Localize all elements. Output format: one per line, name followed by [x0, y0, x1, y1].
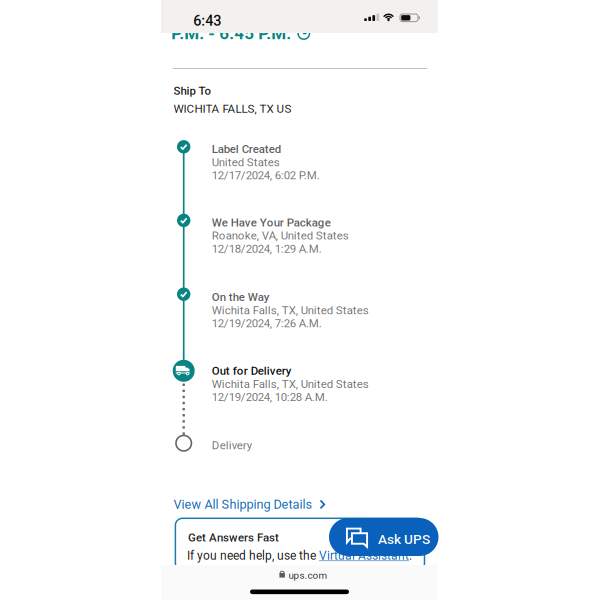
staticText: United States — [212, 155, 280, 169]
staticText: Wichita Falls, TX, United States — [212, 377, 369, 391]
staticText: Out for Delivery — [212, 364, 292, 378]
staticText: 6:43 — [193, 12, 221, 29]
staticText: Virtual Assistant — [319, 548, 409, 563]
staticText: P.M. - 6:45 P.M. — [171, 23, 291, 43]
staticText: Ship To — [173, 84, 211, 97]
staticText: 12/18/2024, 1:29 A.M. — [212, 242, 322, 255]
staticText: Get Answers Fast — [188, 531, 279, 544]
staticText: WICHITA FALLS, TX US — [173, 102, 291, 116]
staticText: View All Shipping Details — [173, 497, 312, 512]
staticText: We Have Your Package — [212, 216, 331, 229]
staticText: On the Way — [212, 290, 270, 304]
staticText: 12/19/2024, 10:28 A.M. — [212, 390, 328, 404]
staticText: . — [409, 548, 412, 563]
staticText: Roanoke, VA, United States — [212, 229, 349, 242]
staticText: Ask UPS — [378, 531, 430, 547]
staticText: 12/19/2024, 7:26 A.M. — [212, 317, 322, 330]
staticText: Label Created — [212, 142, 281, 156]
button[interactable]: View All Shipping Details — [173, 497, 325, 512]
staticText: If you need help, use the — [187, 548, 319, 563]
staticText: 12/17/2024, 6:02 P.M. — [212, 169, 320, 182]
button[interactable]: Ask UPS — [329, 518, 438, 556]
staticText: Wichita Falls, TX, United States — [212, 303, 369, 317]
staticText: Delivery — [212, 439, 252, 452]
staticText: ups.com — [288, 569, 327, 581]
